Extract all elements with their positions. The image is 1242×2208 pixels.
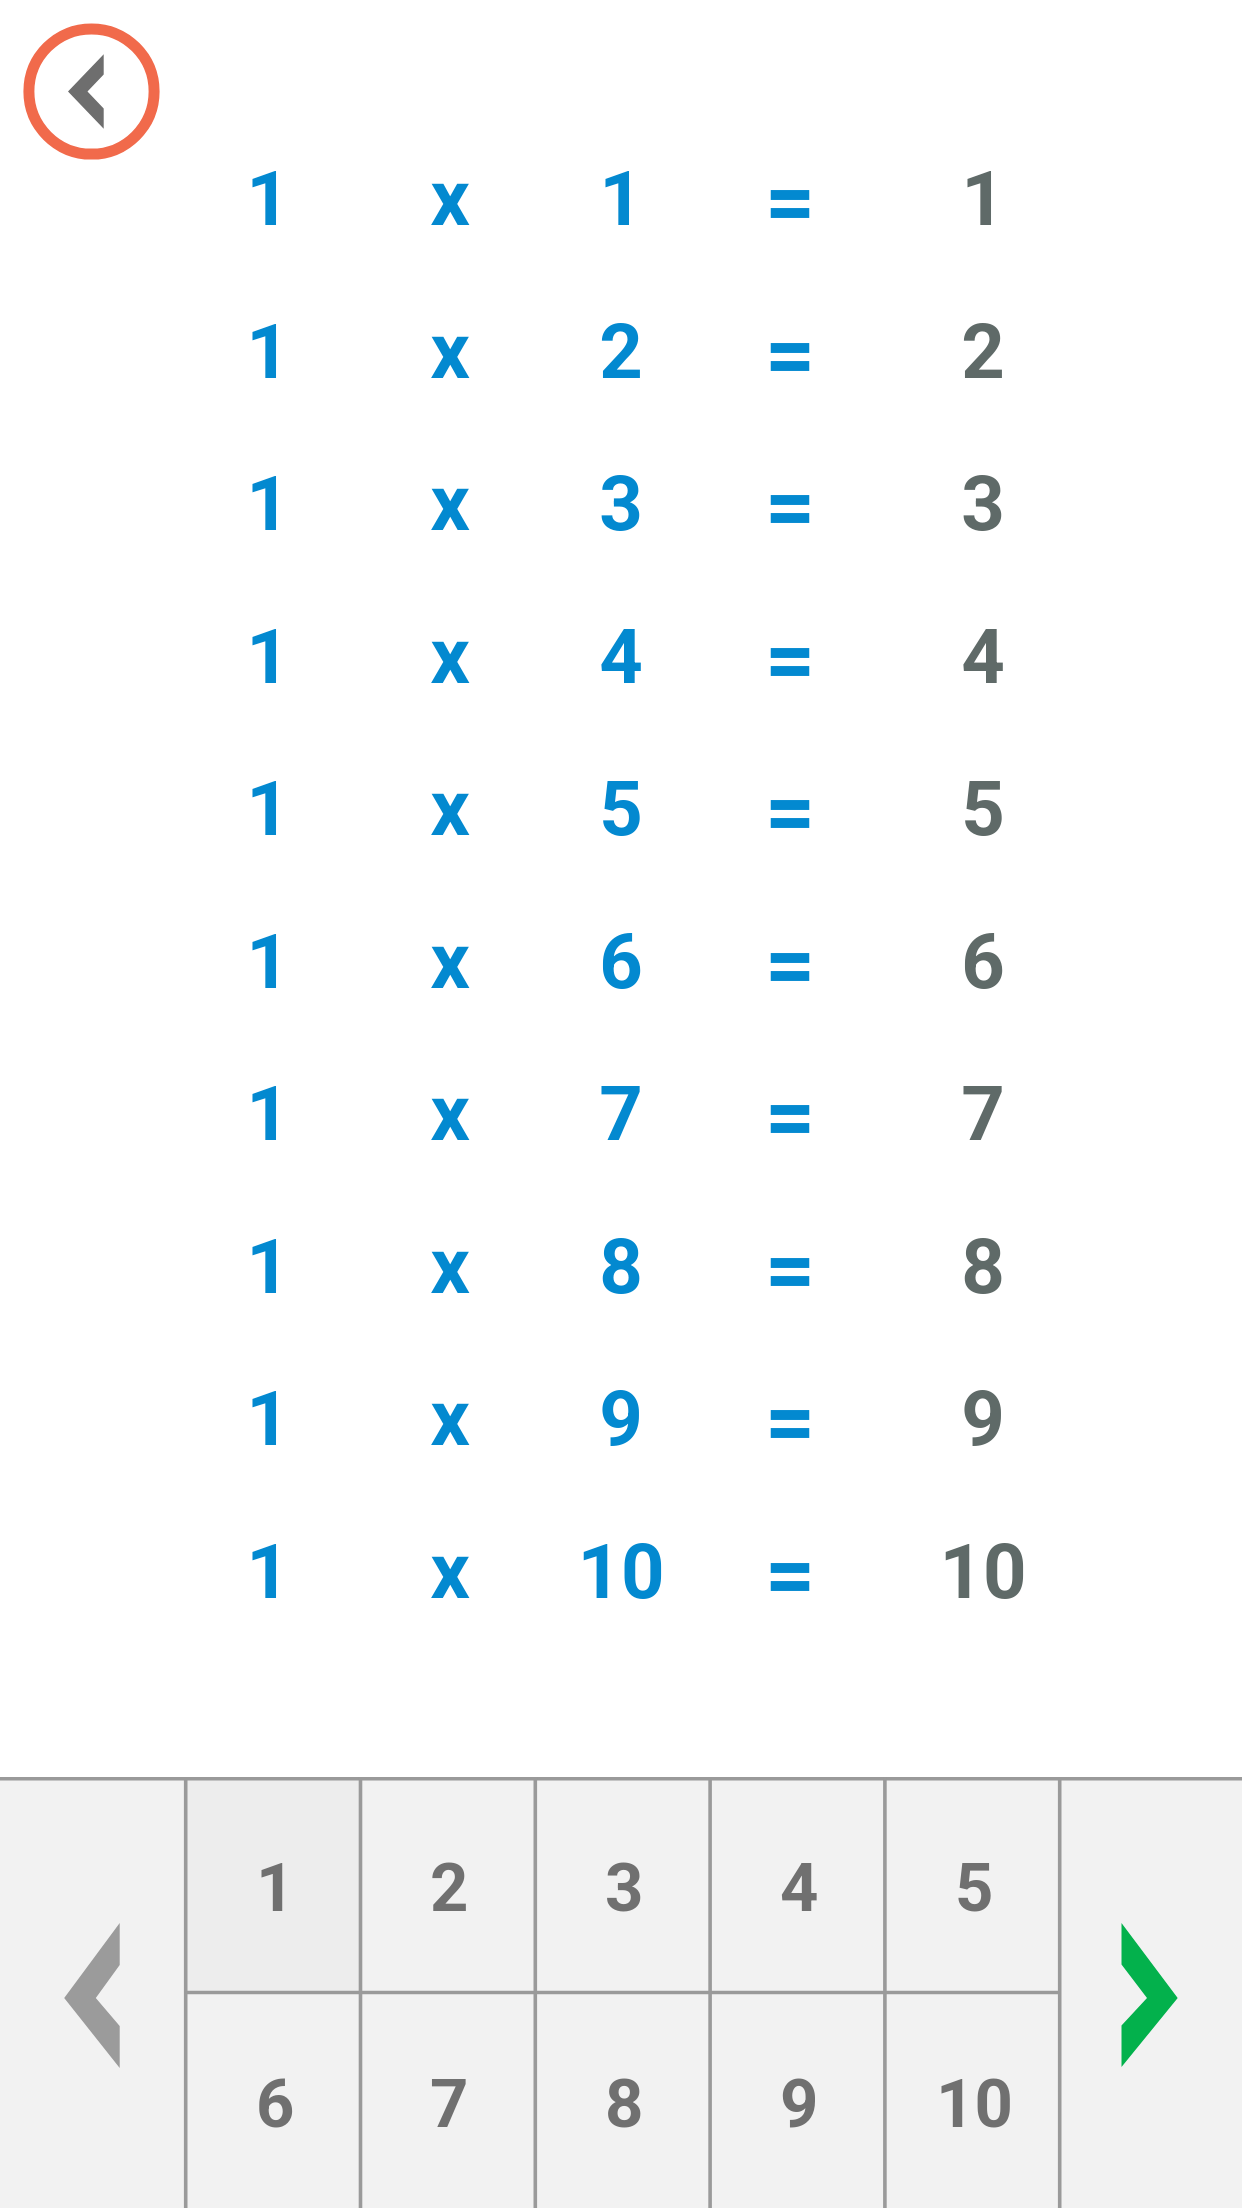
staticText: x bbox=[430, 611, 470, 702]
staticText: 8 bbox=[599, 1222, 643, 1311]
button[interactable]: 2 bbox=[362, 1780, 537, 1996]
staticText: 5 bbox=[955, 1849, 994, 1928]
button[interactable]: 1 times 9 equals 9 bbox=[0, 1342, 1242, 1495]
button[interactable]: 1 times 10 equals 10 bbox=[0, 1494, 1242, 1647]
staticText: x bbox=[430, 153, 470, 244]
button[interactable]: Next table bbox=[1063, 1837, 1242, 2157]
staticText: 10 bbox=[577, 1527, 665, 1616]
staticText: 1 bbox=[599, 154, 643, 243]
staticText: x bbox=[430, 306, 470, 397]
staticText: 2 bbox=[599, 307, 643, 396]
staticText: 1 bbox=[246, 459, 290, 548]
staticText: 9 bbox=[599, 1374, 643, 1463]
staticText: 6 bbox=[961, 917, 1005, 1006]
button[interactable]: 1 times 3 equals 3 bbox=[0, 427, 1242, 580]
staticText: 1 bbox=[246, 1374, 290, 1463]
button[interactable]: 1 times 8 equals 8 bbox=[0, 1189, 1242, 1342]
button[interactable]: Previous table bbox=[0, 1837, 185, 2157]
staticText: 3 bbox=[605, 1849, 644, 1928]
staticText: 2 bbox=[430, 1849, 469, 1928]
staticText: 7 bbox=[961, 1069, 1005, 1158]
staticText: 3 bbox=[961, 459, 1005, 548]
button[interactable]: 6 bbox=[188, 1996, 363, 2208]
staticText: 10 bbox=[939, 1527, 1027, 1616]
button[interactable]: 1 times 4 equals 4 bbox=[0, 579, 1242, 732]
staticText: x bbox=[430, 458, 470, 549]
button[interactable]: 1 bbox=[188, 1780, 363, 1996]
staticText: x bbox=[430, 1068, 470, 1159]
staticText: 1 bbox=[246, 612, 290, 701]
staticText: 6 bbox=[599, 917, 643, 1006]
staticText: 1 bbox=[256, 1849, 295, 1928]
staticText: 1 bbox=[246, 917, 290, 1006]
staticText: 3 bbox=[599, 459, 643, 548]
button[interactable]: 1 times 2 equals 2 bbox=[0, 274, 1242, 427]
button[interactable]: 1 times 6 equals 6 bbox=[0, 884, 1242, 1037]
button[interactable]: 10 bbox=[887, 1996, 1062, 2208]
staticText: 6 bbox=[256, 2065, 295, 2144]
staticText: x bbox=[430, 1526, 470, 1617]
button[interactable]: Back bbox=[20, 20, 163, 163]
staticText: 8 bbox=[961, 1222, 1005, 1311]
staticText: 9 bbox=[780, 2065, 819, 2144]
button[interactable]: 3 bbox=[537, 1780, 712, 1996]
button[interactable]: 1 times 7 equals 7 bbox=[0, 1037, 1242, 1190]
staticText: 7 bbox=[430, 2065, 469, 2144]
button[interactable]: 5 bbox=[887, 1780, 1062, 1996]
button[interactable]: 8 bbox=[537, 1996, 712, 2208]
staticText: 10 bbox=[936, 2065, 1013, 2144]
staticText: 1 bbox=[246, 1069, 290, 1158]
staticText: 1 bbox=[246, 1222, 290, 1311]
staticText: 2 bbox=[961, 307, 1005, 396]
staticText: 1 bbox=[246, 764, 290, 853]
staticText: 5 bbox=[961, 764, 1005, 853]
staticText: 1 bbox=[246, 154, 290, 243]
staticText: 1 bbox=[246, 1527, 290, 1616]
staticText: 8 bbox=[605, 2065, 644, 2144]
button[interactable]: 1 times 1 equals 1 bbox=[0, 122, 1242, 275]
button[interactable]: 7 bbox=[362, 1996, 537, 2208]
staticText: 1 bbox=[961, 154, 1005, 243]
staticText: x bbox=[430, 916, 470, 1007]
staticText: x bbox=[430, 1373, 470, 1464]
staticText: 5 bbox=[599, 764, 643, 853]
button[interactable]: 4 bbox=[712, 1780, 887, 1996]
staticText: x bbox=[430, 1221, 470, 1312]
button[interactable]: 9 bbox=[712, 1996, 887, 2208]
staticText: 7 bbox=[599, 1069, 643, 1158]
button[interactable]: 1 times 5 equals 5 bbox=[0, 732, 1242, 885]
staticText: 1 bbox=[246, 307, 290, 396]
staticText: 4 bbox=[599, 612, 643, 701]
staticText: x bbox=[430, 763, 470, 854]
staticText: 4 bbox=[961, 612, 1005, 701]
staticText: 9 bbox=[961, 1374, 1005, 1463]
staticText: 4 bbox=[780, 1849, 819, 1928]
